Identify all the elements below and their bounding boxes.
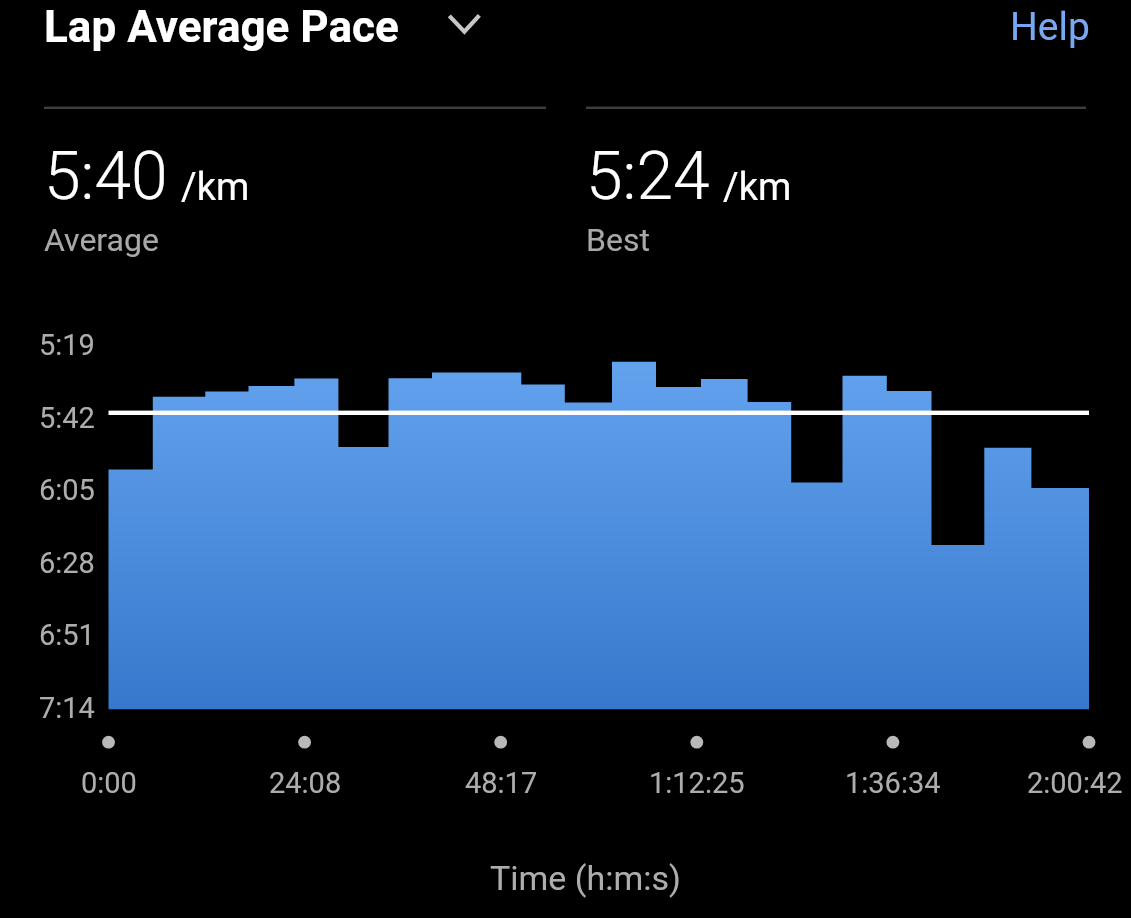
staticText: /km bbox=[723, 165, 792, 210]
button[interactable]: Help bbox=[993, 0, 1107, 60]
staticText: 7:14 bbox=[39, 691, 95, 725]
staticText: /km bbox=[181, 165, 250, 210]
button[interactable]: Lap Average Pace, change chart metric bbox=[44, 0, 481, 55]
staticText: 5:24 bbox=[586, 138, 710, 215]
staticText: 6:28 bbox=[39, 546, 95, 580]
staticText: 1:36:34 bbox=[845, 766, 941, 800]
staticText: 24:08 bbox=[269, 766, 342, 800]
staticText: Time (h:m:s) bbox=[490, 858, 681, 898]
staticText: 2:00:42 bbox=[1027, 766, 1123, 800]
staticText: 6:05 bbox=[39, 473, 95, 507]
staticText: Best bbox=[586, 221, 650, 259]
staticText: 0:00 bbox=[81, 766, 137, 800]
staticText: Lap Average Pace bbox=[44, 1, 399, 53]
staticText: Help bbox=[1010, 4, 1090, 50]
staticText: Average bbox=[44, 221, 159, 259]
staticText: 5:40 bbox=[44, 138, 168, 215]
staticText: 1:12:25 bbox=[649, 766, 745, 800]
staticText: 5:42 bbox=[39, 401, 95, 435]
staticText: 48:17 bbox=[465, 766, 538, 800]
staticText: 6:51 bbox=[39, 618, 95, 652]
staticText: 5:19 bbox=[39, 328, 95, 362]
